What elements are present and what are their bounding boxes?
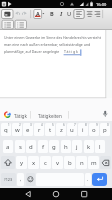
button[interactable]: d: [26, 140, 36, 153]
staticText: 5: [52, 123, 54, 127]
button[interactable]: [34, 10, 45, 19]
staticText: o: [92, 126, 96, 134]
staticText: Unter einem Gewerbe im Sinne des Handels…: [4, 35, 102, 40]
button[interactable]: o: [89, 123, 99, 136]
staticText: b: [68, 159, 72, 167]
staticText: 1: [8, 123, 10, 127]
staticText: 7: [74, 123, 76, 127]
staticText: g: [52, 143, 56, 151]
button[interactable]: ?123: [1, 173, 16, 186]
button[interactable]: v: [52, 156, 63, 169]
button[interactable]: g: [49, 140, 59, 153]
button[interactable]: [57, 10, 65, 19]
button[interactable]: Tätigk: [12, 110, 29, 121]
button[interactable]: e: [23, 123, 33, 136]
button[interactable]: q: [1, 123, 11, 136]
button[interactable]: n: [76, 156, 87, 169]
button[interactable]: .: [85, 173, 91, 186]
button[interactable]: [46, 188, 66, 200]
staticText: r: [38, 126, 41, 134]
button[interactable]: j: [72, 140, 82, 153]
button[interactable]: t: [45, 123, 55, 136]
staticText: u: [70, 126, 74, 134]
button[interactable]: [100, 156, 111, 169]
button[interactable]: z: [56, 123, 66, 136]
button[interactable]: [15, 20, 27, 29]
staticText: 3: [30, 123, 32, 127]
button[interactable]: l: [95, 140, 105, 153]
button[interactable]: b: [64, 156, 75, 169]
staticText: .: [87, 176, 89, 183]
staticText: 16:00: [96, 2, 107, 7]
staticText: 9: [96, 123, 98, 127]
button[interactable]: m: [88, 156, 99, 169]
staticText: q: [4, 126, 8, 134]
button[interactable]: [26, 173, 35, 186]
button[interactable]: [74, 10, 84, 19]
button[interactable]: [65, 10, 73, 19]
button[interactable]: [14, 10, 21, 19]
button[interactable]: p: [100, 123, 110, 136]
staticText: I: [60, 10, 63, 18]
button[interactable]: [2, 10, 14, 19]
staticText: k: [87, 143, 91, 151]
button[interactable]: [0, 30, 106, 98]
button[interactable]: [1, 156, 15, 169]
button[interactable]: h: [61, 140, 71, 153]
staticText: 2: [19, 123, 21, 127]
staticText: 8: [85, 123, 87, 127]
staticText: A: [36, 10, 40, 17]
staticText: f: [42, 143, 45, 151]
staticText: p: [103, 126, 107, 134]
button[interactable]: y: [16, 156, 27, 169]
staticText: B: [50, 10, 54, 18]
button[interactable]: x: [28, 156, 39, 169]
button[interactable]: c: [40, 156, 51, 169]
staticText: 0: [107, 123, 109, 127]
staticText: s: [19, 143, 22, 151]
staticText: d: [29, 143, 33, 151]
button[interactable]: s: [15, 140, 25, 153]
button[interactable]: [2, 20, 14, 29]
button[interactable]: w: [12, 123, 22, 136]
button[interactable]: f: [38, 140, 48, 153]
button[interactable]: ,: [17, 173, 24, 186]
staticText: e: [26, 126, 30, 134]
button[interactable]: [99, 108, 111, 120]
button[interactable]: [85, 10, 94, 19]
button[interactable]: [21, 10, 28, 19]
staticText: man eine nach außen erkennbar, selbststä…: [4, 42, 91, 47]
staticText: ,: [20, 176, 22, 183]
button[interactable]: [74, 188, 94, 200]
staticText: j: [76, 143, 78, 151]
button[interactable]: a: [3, 140, 13, 153]
staticText: n: [80, 159, 84, 167]
staticText: ?123: [4, 177, 13, 182]
button[interactable]: Tätigkeiten: [32, 110, 67, 121]
staticText: Tätigk: [14, 113, 27, 119]
staticText: Tätigkeiten: [38, 113, 62, 119]
button[interactable]: r: [34, 123, 44, 136]
button[interactable]: [92, 173, 107, 186]
button[interactable]: k: [84, 140, 94, 153]
staticText: i: [82, 126, 84, 134]
button[interactable]: [18, 188, 38, 200]
staticText: l: [99, 143, 101, 151]
button[interactable]: [94, 10, 103, 19]
staticText: w: [15, 126, 20, 134]
staticText: U: [67, 10, 72, 18]
staticText: z: [60, 126, 63, 134]
button[interactable]: i: [78, 123, 88, 136]
button[interactable]: u: [67, 123, 77, 136]
staticText: x: [32, 159, 36, 167]
staticText: 4: [41, 123, 43, 127]
staticText: y: [20, 159, 24, 167]
staticText: v: [56, 159, 60, 167]
staticText: t: [49, 126, 52, 134]
staticText: planmäßige, auf Dauer angelegte: [4, 49, 60, 54]
staticText: a: [6, 143, 10, 151]
staticText: 6: [63, 123, 65, 127]
staticText: c: [44, 159, 47, 167]
button[interactable]: [47, 10, 55, 19]
